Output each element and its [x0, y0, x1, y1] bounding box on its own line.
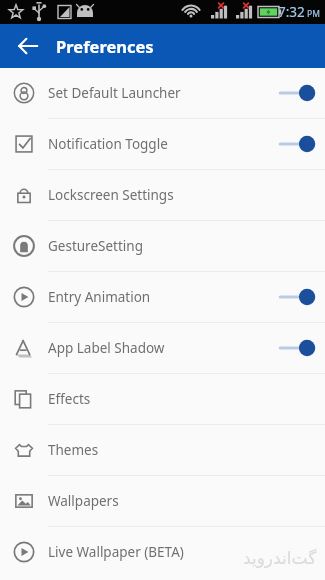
button[interactable]: App Label Shadow switch — [269, 323, 325, 373]
button[interactable]: App Label Shadow — [0, 323, 325, 373]
staticText: Themes — [48, 441, 99, 459]
staticText: Set Default Launcher — [48, 84, 181, 102]
staticText: PM — [307, 8, 320, 20]
button[interactable]: Lockscreen Settings — [0, 170, 325, 220]
staticText: گت‌اندروید — [243, 548, 317, 568]
staticText: Preferences — [56, 35, 154, 57]
staticText: Wallpapers — [48, 492, 119, 510]
staticText: 7:32 — [278, 3, 305, 21]
staticText: Notification Toggle — [48, 135, 168, 153]
button[interactable]: Live Wallpaper (BETA) — [0, 527, 325, 577]
staticText: Lockscreen Settings — [48, 186, 174, 204]
staticText: Entry Animation — [48, 288, 151, 306]
staticText: App Label Shadow — [48, 339, 165, 357]
button[interactable]: Set Default Launcher switch — [269, 68, 325, 118]
button[interactable]: Entry Animation switch — [269, 272, 325, 322]
button[interactable]: Notification Toggle switch — [269, 119, 325, 169]
staticText: GestureSetting — [48, 237, 143, 255]
button[interactable]: Entry Animation — [0, 272, 325, 322]
button[interactable]: Notification Toggle — [0, 119, 325, 169]
button[interactable]: Back — [12, 30, 44, 62]
button[interactable]: Effects — [0, 374, 325, 424]
button[interactable]: Wallpapers — [0, 476, 325, 526]
staticText: Live Wallpaper (BETA) — [48, 543, 184, 561]
button[interactable]: GestureSetting — [0, 221, 325, 271]
button[interactable]: Themes — [0, 425, 325, 475]
button[interactable]: Set Default Launcher — [0, 68, 325, 118]
staticText: Effects — [48, 390, 91, 408]
